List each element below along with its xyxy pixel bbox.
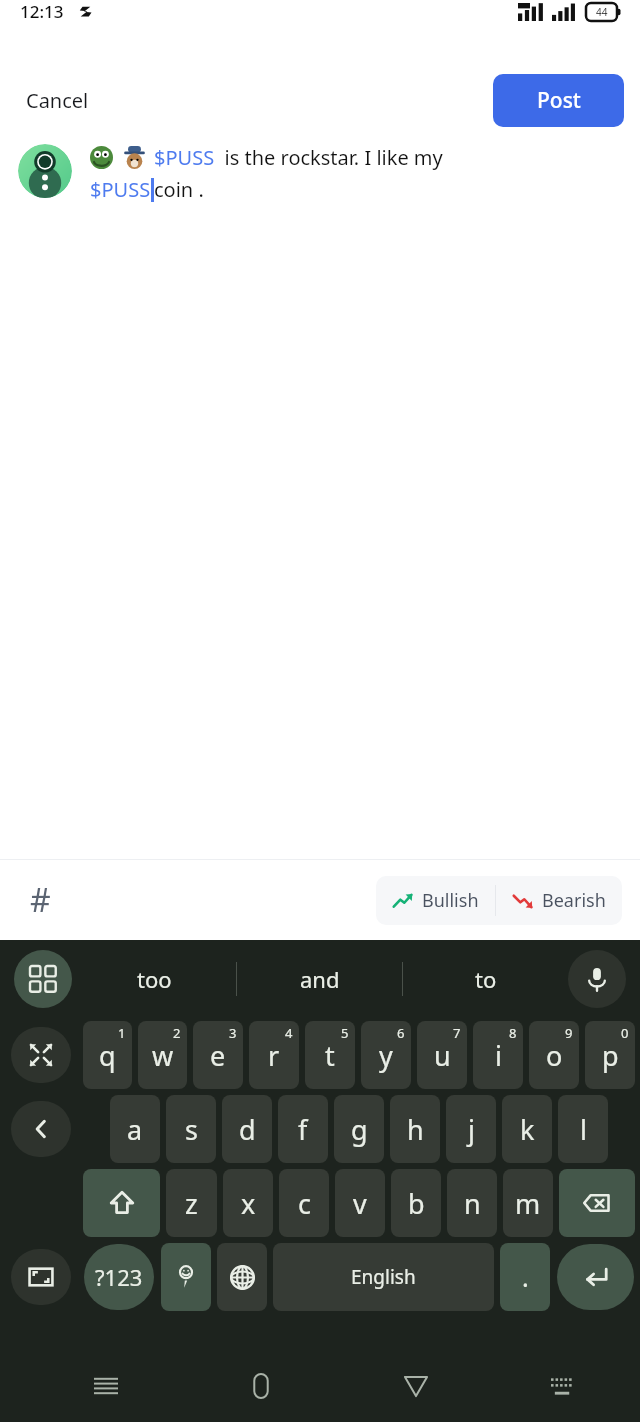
button[interactable]: Back <box>11 1101 71 1157</box>
button[interactable]: Toolbar <box>14 950 72 1008</box>
button[interactable]: ?123 <box>84 1244 154 1310</box>
button[interactable]: Shift <box>83 1169 160 1237</box>
staticText: g <box>351 1111 368 1148</box>
staticText: b <box>408 1185 425 1222</box>
staticText: ?123 <box>95 1262 143 1292</box>
button[interactable]: y <box>361 1021 411 1089</box>
staticText: f <box>298 1111 308 1148</box>
button[interactable]: Hashtag <box>18 878 62 922</box>
staticText: x <box>241 1185 256 1222</box>
button[interactable]: g <box>334 1095 384 1163</box>
staticText: t <box>325 1037 335 1074</box>
button[interactable]: j <box>446 1095 496 1163</box>
button[interactable]: Cancel <box>16 79 99 122</box>
staticText: 3 <box>229 1024 237 1042</box>
staticText: q <box>99 1037 116 1074</box>
staticText: Bearish <box>542 888 606 913</box>
staticText: 9 <box>565 1024 573 1042</box>
staticText: 5 <box>341 1024 349 1042</box>
staticText: 1 <box>118 1024 126 1042</box>
staticText: h <box>407 1111 424 1148</box>
button[interactable]: o <box>529 1021 579 1089</box>
button[interactable]: to <box>403 940 568 1018</box>
button[interactable]: c <box>279 1169 329 1237</box>
staticText: $PUSS <box>90 176 151 203</box>
staticText: i <box>495 1037 502 1074</box>
staticText: 2 <box>173 1024 181 1042</box>
button[interactable]: Resize keyboard <box>11 1027 71 1083</box>
button[interactable]: Home <box>235 1360 287 1412</box>
button[interactable]: and <box>237 940 402 1018</box>
button[interactable]: f <box>278 1095 328 1163</box>
button[interactable]: s <box>166 1095 216 1163</box>
staticText: too <box>137 964 172 994</box>
staticText: s <box>185 1111 198 1148</box>
staticText: k <box>520 1111 535 1148</box>
button[interactable]: Hide keyboard <box>537 1360 589 1412</box>
button[interactable]: x <box>223 1169 273 1237</box>
staticText: c <box>298 1185 311 1222</box>
staticText: 4 <box>285 1024 293 1042</box>
button[interactable]: a <box>110 1095 160 1163</box>
other: Profile avatar <box>18 144 72 198</box>
staticText: . <box>522 1260 529 1294</box>
staticText: v <box>353 1185 367 1222</box>
button[interactable]: Recents <box>80 1360 132 1412</box>
button[interactable]: t <box>305 1021 355 1089</box>
button[interactable]: m <box>503 1169 553 1237</box>
button[interactable]: English <box>273 1243 494 1311</box>
staticText: w <box>152 1037 174 1074</box>
staticText: $PUSS is the rockstar. I like my <box>154 144 443 171</box>
button[interactable]: h <box>390 1095 440 1163</box>
staticText: 7 <box>453 1024 461 1042</box>
button[interactable]: Emoji <box>161 1243 211 1311</box>
button[interactable]: b <box>391 1169 441 1237</box>
staticText: p <box>602 1037 619 1074</box>
button[interactable]: Resize <box>11 1249 71 1305</box>
button[interactable]: e <box>193 1021 243 1089</box>
button[interactable]: u <box>417 1021 467 1089</box>
button[interactable]: k <box>502 1095 552 1163</box>
button[interactable]: Back <box>390 1360 442 1412</box>
staticText: Post <box>537 86 581 115</box>
staticText: 6 <box>397 1024 405 1042</box>
staticText: l <box>580 1111 587 1148</box>
staticText: and <box>300 964 340 994</box>
staticText: n <box>464 1185 481 1222</box>
button[interactable]: Bullish <box>376 876 495 925</box>
staticText: # <box>30 878 51 922</box>
button[interactable]: p <box>585 1021 635 1089</box>
staticText: a <box>127 1111 143 1148</box>
button[interactable]: n <box>447 1169 497 1237</box>
staticText: d <box>239 1111 256 1148</box>
staticText: o <box>546 1037 563 1074</box>
staticText: u <box>434 1037 451 1074</box>
staticText: Cancel <box>26 87 89 114</box>
button[interactable]: Enter <box>557 1244 634 1310</box>
button[interactable]: . <box>500 1243 550 1311</box>
staticText: to <box>475 964 497 994</box>
button[interactable]: Change language <box>217 1243 267 1311</box>
button[interactable]: v <box>335 1169 385 1237</box>
staticText: e <box>210 1037 226 1074</box>
button[interactable]: i <box>473 1021 523 1089</box>
button[interactable]: Voice input <box>568 950 626 1008</box>
button[interactable]: w <box>138 1021 187 1089</box>
staticText: Bullish <box>422 888 479 913</box>
staticText: 8 <box>509 1024 517 1042</box>
button[interactable]: Backspace <box>559 1169 635 1237</box>
staticText: j <box>468 1111 475 1148</box>
button[interactable]: d <box>222 1095 272 1163</box>
button[interactable]: z <box>166 1169 217 1237</box>
button[interactable]: too <box>72 940 236 1018</box>
button[interactable]: l <box>558 1095 608 1163</box>
button[interactable]: Post <box>493 74 624 127</box>
button[interactable]: r <box>249 1021 299 1089</box>
staticText: English <box>351 1264 416 1290</box>
staticText: m <box>515 1185 541 1222</box>
button[interactable]: q <box>83 1021 132 1089</box>
button[interactable]: Bearish <box>496 876 622 925</box>
staticText: 0 <box>621 1024 629 1042</box>
staticText: 12:13 <box>20 0 64 23</box>
staticText: z <box>185 1185 198 1222</box>
